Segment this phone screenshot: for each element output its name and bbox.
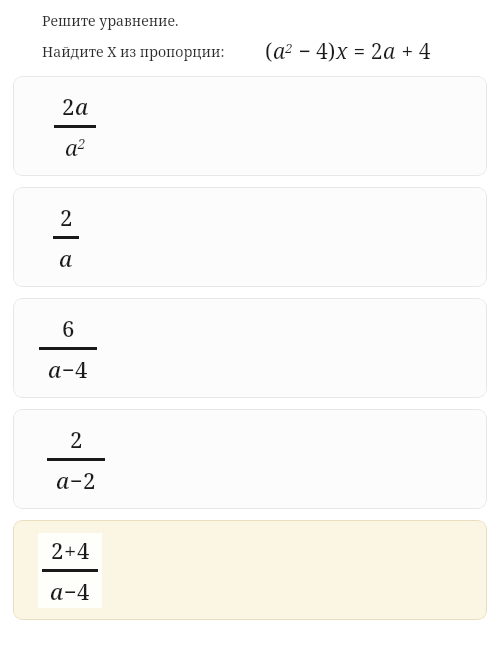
button[interactable]: 2	[13, 520, 487, 620]
staticText: a2	[273, 37, 293, 66]
button[interactable]: 2	[13, 76, 487, 176]
button[interactable]: 2	[13, 409, 487, 509]
staticText: 2	[51, 535, 64, 565]
staticText: a	[383, 37, 396, 66]
staticText: + 4	[396, 37, 431, 66]
staticText: a	[48, 354, 62, 384]
staticText: 2	[60, 202, 73, 232]
staticText: −	[62, 354, 75, 384]
staticText: (	[265, 37, 273, 66]
staticText: Найдите X из пропорции:	[42, 42, 225, 61]
staticText: 2	[83, 465, 96, 495]
staticText: 6	[62, 313, 75, 343]
staticText: −	[64, 576, 77, 606]
staticText: −	[70, 465, 83, 495]
staticText: +	[64, 535, 77, 565]
staticText: 2	[62, 91, 75, 121]
staticText: a2	[65, 132, 86, 162]
staticText: a	[56, 465, 70, 495]
staticText: a	[59, 243, 73, 273]
staticText: Решите уравнение.	[42, 11, 179, 30]
staticText: = 2	[348, 37, 383, 66]
staticText: − 4	[293, 37, 328, 66]
staticText: 2	[70, 424, 83, 454]
staticText: x	[336, 37, 348, 66]
staticText: )	[328, 37, 336, 66]
staticText: 4	[77, 576, 90, 606]
button[interactable]: 6	[13, 298, 487, 398]
staticText: 4	[75, 354, 88, 384]
staticText: a	[75, 91, 89, 121]
staticText: 4	[77, 535, 90, 565]
button[interactable]: 2	[13, 187, 487, 287]
staticText: a	[50, 576, 64, 606]
